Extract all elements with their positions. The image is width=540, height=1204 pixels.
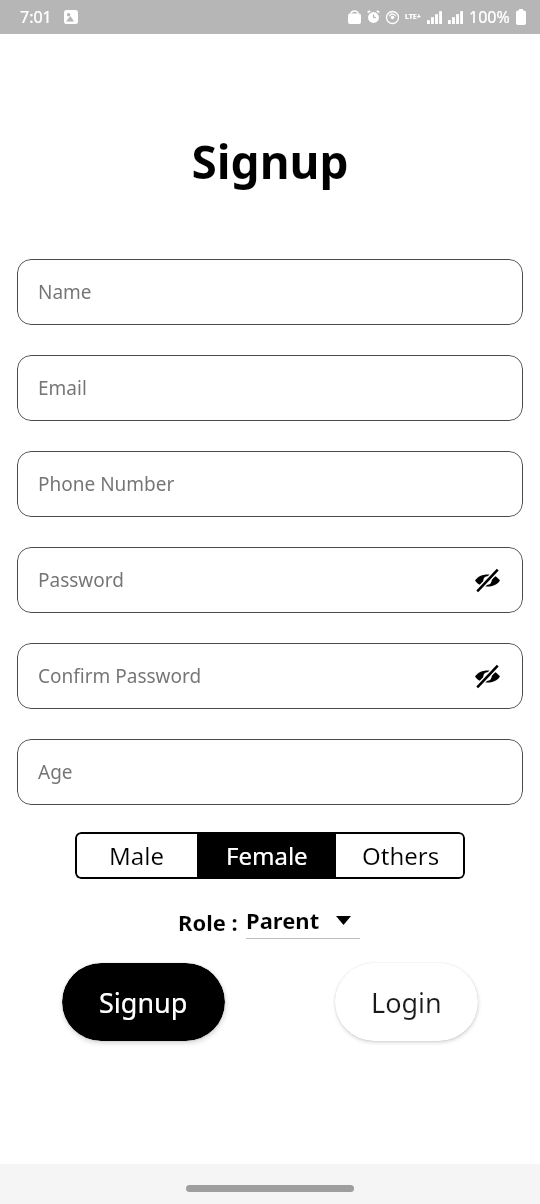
staticText: 100% bbox=[469, 6, 510, 28]
staticText: Role : bbox=[178, 907, 244, 937]
staticText: Password bbox=[38, 567, 124, 593]
button[interactable]: Signup bbox=[62, 963, 225, 1041]
staticText: Parent bbox=[246, 905, 320, 935]
staticText: Male bbox=[109, 839, 164, 872]
staticText: LTE+ bbox=[405, 12, 421, 22]
button[interactable]: Name bbox=[17, 259, 523, 325]
staticText: Confirm Password bbox=[38, 663, 202, 689]
staticText: Phone Number bbox=[38, 471, 175, 497]
staticText: Female bbox=[226, 839, 308, 872]
button[interactable]: Email bbox=[17, 355, 523, 421]
staticText: Age bbox=[38, 759, 73, 785]
staticText: Name bbox=[38, 279, 92, 305]
button[interactable]: Age bbox=[17, 739, 523, 805]
button[interactable]: Female bbox=[197, 832, 336, 879]
staticText: Signup bbox=[99, 984, 188, 1021]
button[interactable]: Others bbox=[336, 832, 465, 879]
button[interactable]: Male bbox=[75, 832, 197, 879]
button[interactable]: Login bbox=[335, 963, 478, 1041]
staticText: 7:01 bbox=[20, 6, 52, 28]
staticText: Email bbox=[38, 375, 87, 401]
button[interactable]: Confirm Password bbox=[17, 643, 523, 709]
button[interactable]: Password bbox=[17, 547, 523, 613]
staticText: Others bbox=[362, 839, 440, 872]
staticText: Login bbox=[371, 984, 442, 1021]
staticText: Signup bbox=[0, 130, 540, 193]
button[interactable]: Toggle password visibility bbox=[465, 654, 509, 698]
button[interactable]: Toggle password visibility bbox=[465, 558, 509, 602]
button[interactable]: Phone Number bbox=[17, 451, 523, 517]
button[interactable]: Parent bbox=[244, 905, 362, 939]
